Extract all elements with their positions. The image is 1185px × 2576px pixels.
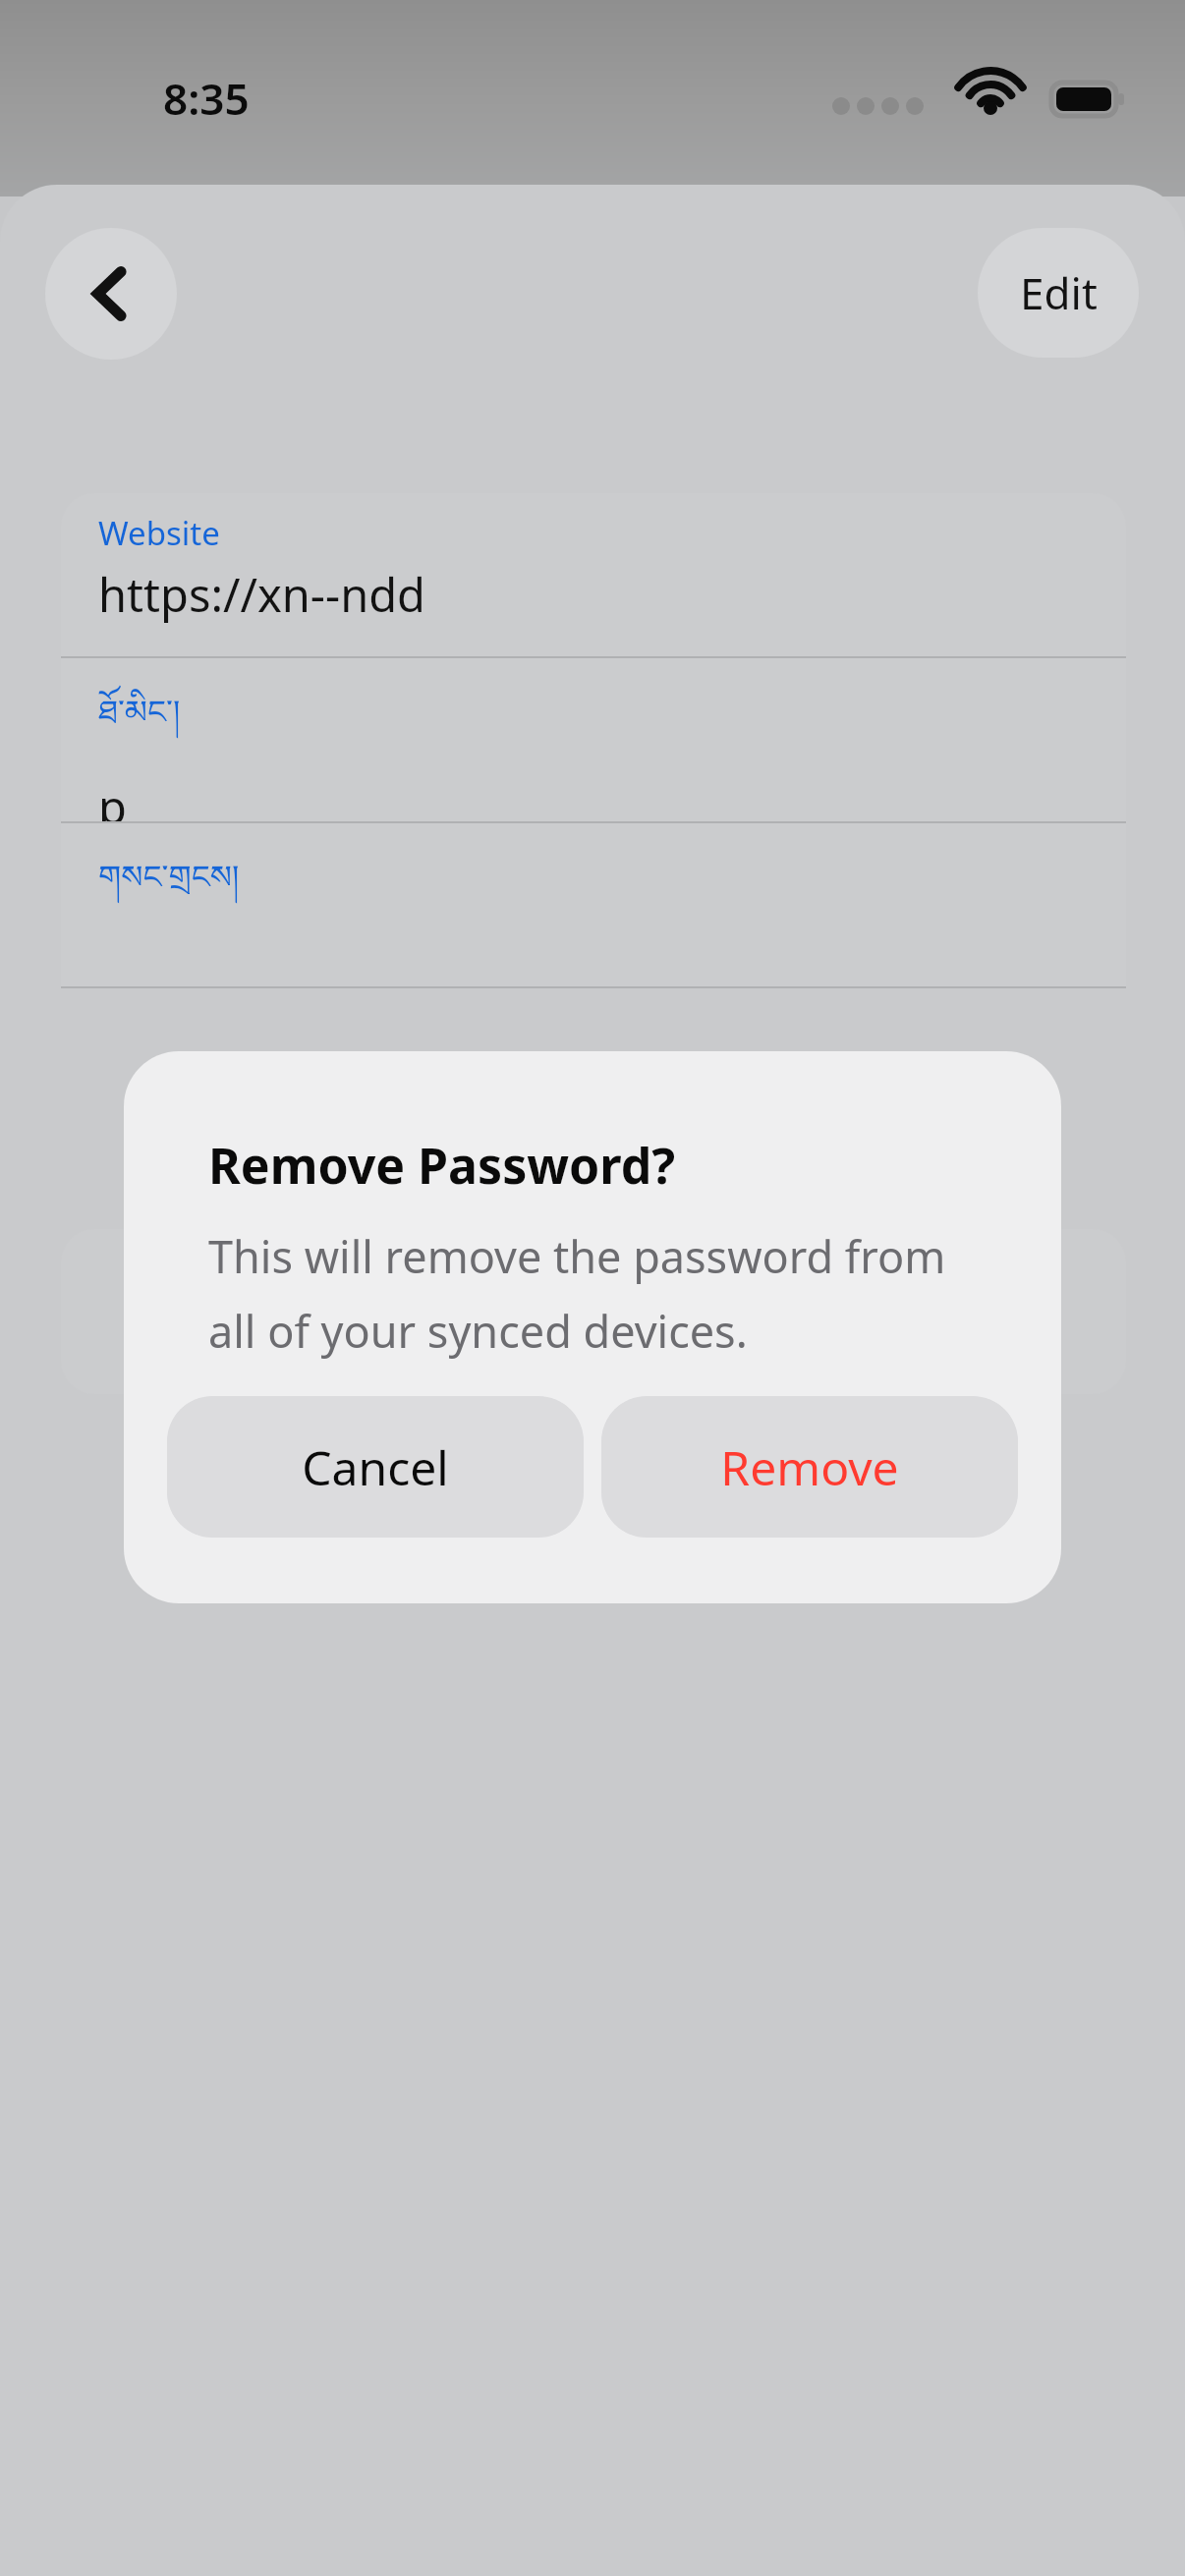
staticText: Cancel (302, 1435, 449, 1499)
staticText: https://xn--ndd (98, 563, 425, 626)
staticText: Remove Password? (208, 1132, 676, 1199)
button[interactable]: ཐོ་མིང་། (61, 658, 1126, 823)
staticText: གསང་གྲངས། (98, 841, 240, 932)
staticText: Edit (1020, 263, 1098, 322)
button[interactable]: Website (61, 493, 1126, 658)
button[interactable]: Back (45, 228, 177, 360)
staticText: ཐོ་མིང་། (98, 676, 181, 767)
staticText: 8:35 (163, 69, 250, 128)
staticText: This will remove the password from all o… (208, 1226, 946, 1361)
staticText: Website (98, 511, 220, 555)
staticText: Remove (720, 1435, 899, 1499)
button[interactable]: Remove (601, 1396, 1018, 1538)
button[interactable]: Edit (978, 228, 1139, 358)
button[interactable]: Cancel (167, 1396, 584, 1538)
staticText: p (98, 775, 127, 821)
button[interactable]: གསང་གྲངས། (61, 823, 1126, 988)
